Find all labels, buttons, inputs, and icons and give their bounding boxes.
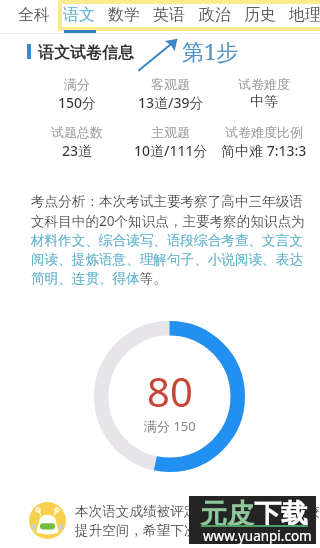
staticText: 政治 [199, 5, 231, 25]
button[interactable]: 政治 [199, 3, 232, 26]
staticText: 语文 [63, 5, 95, 25]
staticText: 试卷难度比例 [225, 124, 303, 140]
staticText: 80 [147, 364, 193, 418]
staticText: 下载 [254, 497, 308, 531]
staticText: 历史 [244, 5, 276, 25]
staticText: 13道/39分 [138, 93, 204, 112]
staticText: 全科 [18, 5, 50, 25]
staticText: 语文试卷信息 [38, 43, 134, 63]
staticText: 10道/111分 [134, 141, 208, 160]
staticText: 23道 [62, 141, 93, 160]
staticText: 主观题 [151, 124, 190, 140]
button[interactable]: 全科 [18, 3, 51, 26]
staticText: 试卷难度 [238, 76, 290, 92]
button[interactable]: 英语 [153, 3, 186, 26]
staticText: 元皮 [200, 497, 254, 531]
button[interactable]: 语文 [63, 3, 96, 26]
staticText: 地理 [289, 5, 320, 25]
staticText: 满分 150 [144, 417, 196, 435]
staticText: 客观题 [151, 76, 190, 92]
other: 步骤指引 [136, 36, 180, 72]
button[interactable]: 地理 [289, 3, 320, 26]
staticText: 数学 [108, 5, 140, 25]
button[interactable]: 历史 [244, 3, 277, 26]
button[interactable]: 数学 [108, 3, 141, 26]
staticText: 满分 [64, 76, 90, 92]
staticText: www.yuanpi.com [203, 527, 312, 545]
staticText: 英语 [153, 5, 185, 25]
staticText: 中等 [250, 93, 278, 111]
staticText: 150分 [58, 93, 97, 112]
staticText: 第1步 [182, 36, 239, 66]
staticText: 考点分析：本次考试主要考察了高中三年级语文科目中的20个知识点，主要考察的知识点… [31, 193, 306, 287]
staticText: 试题总数 [51, 124, 103, 140]
staticText: 提升空间，希望下次继续努力！ [75, 522, 266, 539]
staticText: 本次语文成绩被评定为中等偏上，还有较大的 [75, 503, 320, 520]
staticText: 简中难 7:13:3 [221, 141, 307, 160]
